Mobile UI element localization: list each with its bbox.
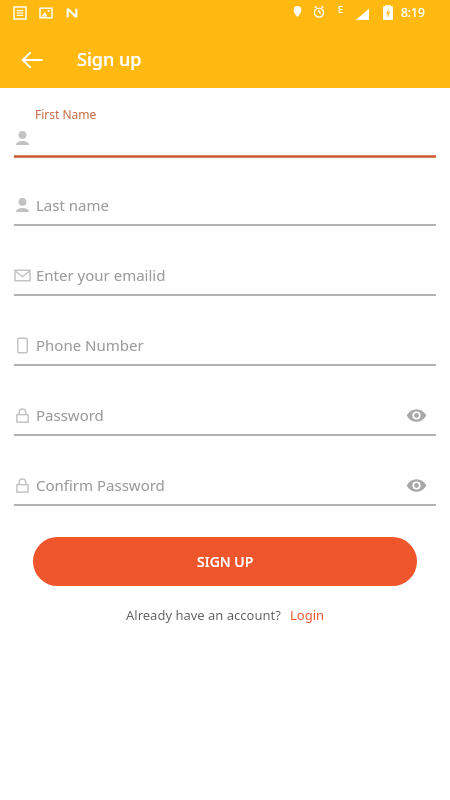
- staticText: Last name: [36, 195, 109, 215]
- button[interactable]: Last name: [0, 171, 450, 241]
- staticText: Phone Number: [36, 335, 144, 355]
- button[interactable]: Back: [12, 40, 52, 80]
- staticText: SIGN UP: [197, 552, 254, 571]
- staticText: Login: [290, 606, 325, 624]
- button[interactable]: Phone Number: [0, 311, 450, 381]
- button[interactable]: Enter your emailid: [0, 241, 450, 311]
- button[interactable]: First Name: [0, 101, 450, 161]
- button[interactable]: Show password: [400, 469, 432, 501]
- button[interactable]: Password: [0, 381, 450, 451]
- button[interactable]: SIGN UP: [33, 537, 417, 586]
- staticText: Confirm Password: [36, 475, 165, 495]
- staticText: Sign up: [77, 47, 142, 72]
- staticText: 8:19: [401, 4, 425, 20]
- button[interactable]: Login: [290, 606, 325, 624]
- staticText: Password: [36, 405, 104, 425]
- staticText: Enter your emailid: [36, 265, 166, 285]
- button[interactable]: Confirm Password: [0, 451, 450, 521]
- button[interactable]: Show password: [400, 399, 432, 431]
- staticText: First Name: [35, 106, 97, 122]
- staticText: Already have an account?: [126, 606, 281, 624]
- staticText: E: [338, 3, 344, 15]
